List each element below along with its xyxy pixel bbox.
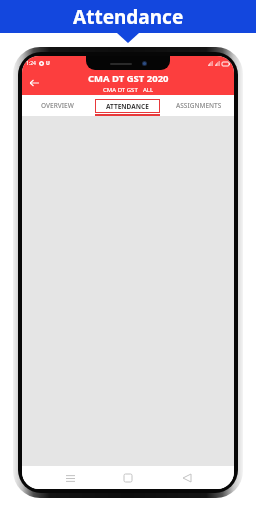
button[interactable]: ASSIGNMENTS: [163, 95, 234, 116]
staticText: CMA DT GST 2020: [88, 72, 169, 85]
staticText: ASSIGNMENTS: [176, 101, 222, 110]
staticText: ALL: [143, 86, 154, 94]
staticText: 1:24: [26, 60, 36, 67]
button[interactable]: OVERVIEW: [22, 95, 92, 116]
button[interactable]: Home: [117, 467, 139, 489]
staticText: OVERVIEW: [41, 101, 74, 110]
staticText: U: [46, 60, 50, 67]
button[interactable]: Back: [176, 467, 198, 489]
staticText: Attendance: [73, 4, 184, 30]
staticText: CMA DT GST: [103, 86, 138, 94]
button[interactable]: Back: [25, 74, 43, 92]
staticText: ATTENDANCE: [106, 102, 149, 111]
button[interactable]: Recents: [59, 467, 81, 489]
button[interactable]: ATTENDANCE: [92, 95, 163, 116]
